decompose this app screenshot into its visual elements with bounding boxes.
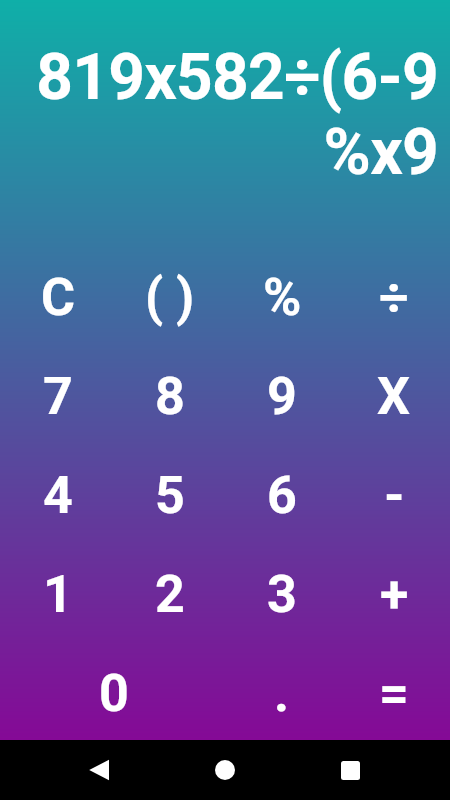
button[interactable]: 3: [226, 545, 338, 644]
button[interactable]: +: [338, 545, 450, 644]
button[interactable]: 2: [114, 545, 226, 644]
staticText: -: [384, 465, 405, 526]
staticText: X: [377, 366, 411, 427]
button[interactable]: Recent apps: [250, 740, 450, 800]
staticText: 819x582÷(6-9 %x9: [16, 40, 438, 190]
staticText: 6: [267, 465, 297, 526]
button[interactable]: -: [338, 446, 450, 545]
button[interactable]: 9: [226, 347, 338, 446]
button[interactable]: Home: [200, 740, 250, 800]
staticText: 5: [155, 465, 185, 526]
staticText: 2: [155, 564, 185, 625]
staticText: 3: [267, 564, 297, 625]
staticText: 1: [43, 564, 73, 625]
staticText: +: [380, 564, 409, 625]
staticText: 4: [43, 465, 73, 526]
staticText: .: [274, 663, 290, 724]
staticText: 8: [155, 366, 185, 427]
staticText: %: [263, 267, 302, 328]
button[interactable]: 6: [226, 446, 338, 545]
button[interactable]: .: [226, 644, 338, 742]
staticText: C: [41, 267, 76, 328]
button[interactable]: 5: [114, 446, 226, 545]
button[interactable]: X: [338, 347, 450, 446]
button[interactable]: 1: [2, 545, 114, 644]
staticText: ( ): [145, 267, 195, 328]
button[interactable]: C: [2, 248, 114, 347]
button[interactable]: 8: [114, 347, 226, 446]
button[interactable]: %: [226, 248, 338, 347]
button[interactable]: 4: [2, 446, 114, 545]
staticText: ÷: [379, 267, 409, 328]
button[interactable]: 7: [2, 347, 114, 446]
staticText: 0: [99, 663, 129, 724]
staticText: 9: [267, 366, 297, 427]
button[interactable]: =: [338, 644, 450, 742]
staticText: 7: [43, 366, 73, 427]
button[interactable]: Back: [0, 740, 200, 800]
button[interactable]: ( ): [114, 248, 226, 347]
button[interactable]: ÷: [338, 248, 450, 347]
staticText: =: [379, 663, 409, 724]
button[interactable]: 0: [2, 644, 226, 742]
